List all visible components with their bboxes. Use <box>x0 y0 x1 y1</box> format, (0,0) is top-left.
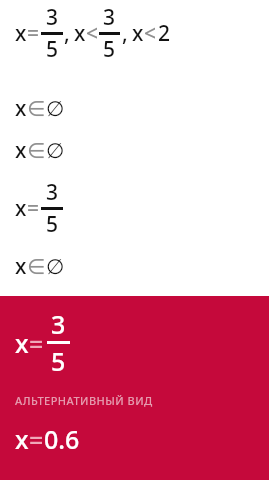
staticText: = <box>27 194 40 223</box>
staticText: = <box>29 326 44 360</box>
staticText: 3 <box>46 3 59 32</box>
staticText: , <box>122 19 128 48</box>
staticText: x <box>15 326 29 360</box>
staticText: 5 <box>46 210 59 239</box>
staticText: < <box>144 19 157 48</box>
button[interactable]: x <box>0 0 269 296</box>
staticText: x <box>132 19 144 48</box>
staticText: < <box>86 19 99 48</box>
button[interactable]: x <box>0 296 269 480</box>
staticText: 3 <box>51 307 66 341</box>
staticText: x <box>15 94 27 123</box>
staticText: 3 <box>103 3 116 32</box>
staticText: ∅ <box>46 139 65 163</box>
staticText: ∈ <box>27 139 46 163</box>
staticText: 3 <box>46 178 59 207</box>
staticText: 2 <box>158 19 171 48</box>
staticText: ∅ <box>46 255 65 279</box>
staticText: ∈ <box>27 255 46 279</box>
staticText: ∈ <box>27 97 46 121</box>
staticText: x <box>74 19 86 48</box>
staticText: x <box>15 252 27 281</box>
staticText: , <box>64 19 70 48</box>
staticText: АЛЬТЕРНАТИВНЫЙ ВИД <box>15 393 153 408</box>
staticText: = <box>27 19 40 48</box>
staticText: x <box>15 422 29 456</box>
staticText: x <box>15 19 27 48</box>
staticText: x <box>15 136 27 165</box>
staticText: x <box>15 194 27 223</box>
staticText: 5 <box>51 344 66 378</box>
staticText: 0.6 <box>44 422 80 456</box>
staticText: 5 <box>46 35 59 64</box>
staticText: 5 <box>103 35 116 64</box>
staticText: ∅ <box>46 97 65 121</box>
staticText: = <box>29 422 44 456</box>
